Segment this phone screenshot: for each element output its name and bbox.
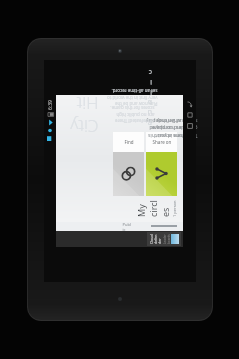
button[interactable]: Recent apps <box>56 231 183 247</box>
staticText: No one in your circles has played Cloud … <box>142 117 190 138</box>
staticText: Leaderboards <box>163 234 171 244</box>
button[interactable]: My circles <box>135 196 177 217</box>
button[interactable]: Home <box>184 110 195 121</box>
staticText: 1 person <box>172 200 177 217</box>
staticText: Public <box>122 221 131 231</box>
staticText: Cloud defender <box>149 234 162 244</box>
staticText: City Hit <box>63 91 98 137</box>
button[interactable]: Public <box>119 222 135 231</box>
button[interactable]: Share on Google Plus <box>146 132 177 196</box>
button[interactable]: Recent apps <box>184 121 195 132</box>
staticText: 6:39 <box>47 100 54 110</box>
staticText: Undefeated! There are no public high sco… <box>108 104 154 123</box>
staticText: Find people <box>119 139 139 145</box>
staticText: Tell others about this game and compare … <box>135 117 197 138</box>
staticText: Share on Google+ <box>152 139 172 145</box>
staticText: Play now and be the very first in the wo… <box>105 87 157 106</box>
button[interactable]: Back <box>184 99 195 110</box>
button[interactable]: Find people <box>113 132 144 196</box>
staticText: My circles <box>135 196 171 217</box>
